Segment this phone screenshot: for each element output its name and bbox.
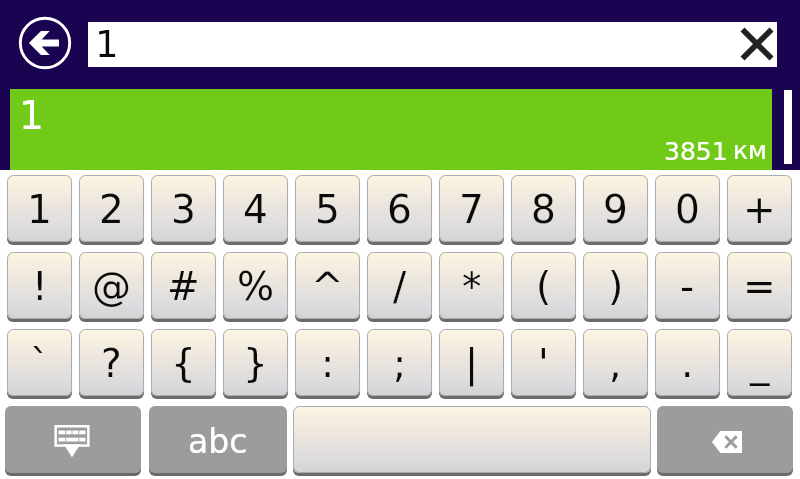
staticText: 1 — [95, 23, 119, 66]
staticText: , — [609, 341, 622, 386]
button[interactable]: Back — [19, 17, 71, 69]
staticText: 6 — [387, 187, 412, 232]
staticText: 3 — [171, 187, 196, 232]
button[interactable]: | — [439, 329, 504, 399]
button[interactable]: ? — [79, 329, 144, 399]
button[interactable]: @ — [79, 252, 144, 322]
staticText: = — [743, 264, 776, 309]
staticText: 7 — [459, 187, 484, 232]
button[interactable]: 7 — [439, 175, 504, 245]
staticText: ) — [608, 264, 624, 309]
staticText: 3851 — [664, 137, 728, 166]
button[interactable]: 1 — [10, 89, 772, 170]
button[interactable]: 2 — [79, 175, 144, 245]
button[interactable]: ) — [583, 252, 648, 322]
button[interactable]: ` — [7, 329, 72, 399]
button[interactable]: / — [367, 252, 432, 322]
button[interactable]: . — [655, 329, 720, 399]
button[interactable]: 9 — [583, 175, 648, 245]
button[interactable]: : — [295, 329, 360, 399]
staticText: 4 — [243, 187, 268, 232]
staticText: { — [171, 341, 196, 386]
staticText: 1 — [27, 187, 52, 232]
button[interactable]: 4 — [223, 175, 288, 245]
button[interactable]: Space — [293, 406, 651, 476]
staticText: @ — [92, 264, 131, 309]
staticText: | — [465, 341, 479, 386]
button[interactable]: ( — [511, 252, 576, 322]
button[interactable]: 1 — [7, 175, 72, 245]
button[interactable]: ^ — [295, 252, 360, 322]
button[interactable]: ' — [511, 329, 576, 399]
button[interactable]: Clear text — [732, 22, 782, 66]
button[interactable]: _ — [727, 329, 792, 399]
staticText: % — [237, 264, 275, 309]
staticText: abc — [188, 422, 248, 460]
staticText: * — [462, 264, 482, 309]
staticText: 5 — [315, 187, 340, 232]
staticText: : — [321, 341, 335, 386]
staticText: 1 — [19, 93, 44, 138]
staticText: ( — [536, 264, 552, 309]
button[interactable]: 5 — [295, 175, 360, 245]
button[interactable]: } — [223, 329, 288, 399]
button[interactable]: - — [655, 252, 720, 322]
staticText: ! — [32, 264, 48, 309]
staticText: 9 — [603, 187, 628, 232]
staticText: } — [243, 341, 268, 386]
staticText: . — [681, 341, 694, 386]
staticText: # — [167, 264, 200, 309]
button[interactable]: Hide keyboard — [5, 406, 141, 476]
staticText: 0 — [675, 187, 700, 232]
button[interactable]: ! — [7, 252, 72, 322]
button[interactable]: * — [439, 252, 504, 322]
button[interactable]: Backspace — [657, 406, 793, 476]
button[interactable]: abc — [149, 406, 287, 476]
button[interactable]: # — [151, 252, 216, 322]
button[interactable]: , — [583, 329, 648, 399]
staticText: ; — [393, 341, 407, 386]
button[interactable]: { — [151, 329, 216, 399]
staticText: ^ — [311, 264, 344, 309]
staticText: ' — [538, 341, 549, 386]
button[interactable]: 0 — [655, 175, 720, 245]
button[interactable]: ; — [367, 329, 432, 399]
button[interactable]: 8 — [511, 175, 576, 245]
staticText: 2 — [99, 187, 124, 232]
staticText: + — [743, 187, 776, 232]
staticText: _ — [750, 341, 770, 386]
button[interactable]: % — [223, 252, 288, 322]
button[interactable]: 3 — [151, 175, 216, 245]
staticText: км — [733, 136, 767, 165]
staticText: ` — [30, 341, 50, 386]
staticText: 8 — [531, 187, 556, 232]
staticText: / — [393, 264, 407, 309]
button[interactable]: + — [727, 175, 792, 245]
staticText: - — [680, 264, 695, 309]
button[interactable]: = — [727, 252, 792, 322]
button[interactable]: 1 — [88, 22, 777, 67]
staticText: ? — [101, 341, 122, 386]
button[interactable]: 6 — [367, 175, 432, 245]
